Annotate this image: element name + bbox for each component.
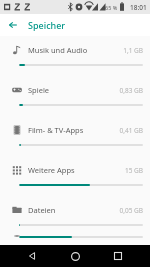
button[interactable]: Weitere Apps (0, 156, 150, 196)
button[interactable]: Übersicht (107, 245, 129, 267)
staticText: 65 % (105, 4, 118, 11)
staticText: 0,83 GB (119, 86, 143, 95)
button[interactable]: System (0, 236, 150, 245)
staticText: 15 GB (124, 166, 143, 175)
button[interactable]: Zurück (21, 245, 43, 267)
button[interactable]: Dateien (0, 196, 150, 236)
staticText: 18:01 (130, 3, 147, 12)
staticText: Weitere Apps (28, 165, 124, 175)
staticText: Musik und Audio (28, 45, 123, 55)
staticText: Spiele (28, 85, 119, 95)
staticText: 1,1 GB (123, 46, 143, 55)
button[interactable]: Startbildschirm (64, 245, 86, 267)
button[interactable]: Zurück (5, 17, 21, 33)
staticText: 0,41 GB (119, 126, 143, 135)
staticText: Speicher (28, 19, 66, 31)
staticText: Film- & TV-Apps (28, 125, 119, 135)
staticText: Dateien (28, 205, 119, 215)
button[interactable]: Musik und Audio (0, 36, 150, 76)
button[interactable]: Film- & TV-Apps (0, 116, 150, 156)
staticText: 0,05 GB (119, 206, 143, 215)
button[interactable]: Spiele (0, 76, 150, 116)
